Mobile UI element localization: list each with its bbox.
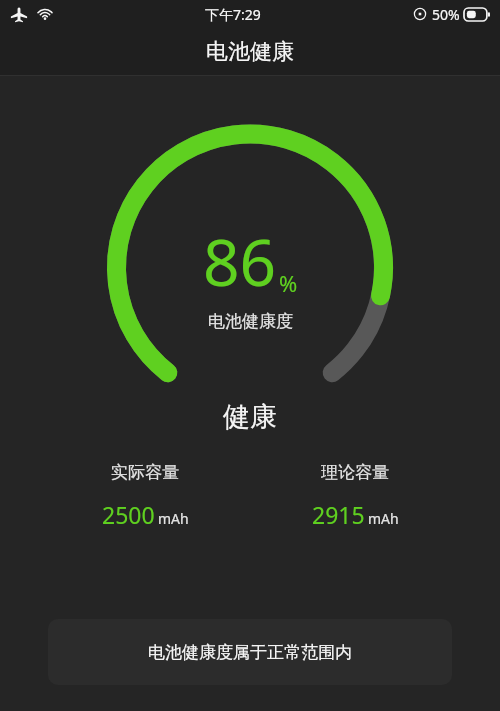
staticText: 50% [432, 5, 460, 24]
staticText: 86 [203, 218, 277, 305]
staticText: 健康 [0, 400, 500, 434]
staticText: 电池健康 [206, 38, 294, 66]
staticText: mAh [158, 509, 189, 528]
staticText: 理论容量 [321, 462, 389, 483]
staticText: 2915 [312, 499, 365, 530]
staticText: 电池健康度属于正常范围内 [148, 642, 352, 663]
staticText: 实际容量 [111, 462, 179, 483]
staticText: 下午7:29 [205, 5, 261, 24]
staticText: 2500 [102, 499, 155, 530]
staticText: mAh [368, 509, 399, 528]
button[interactable]: 电池健康度属于正常范围内 [48, 619, 452, 685]
staticText: % [279, 268, 298, 298]
staticText: 电池健康度 [208, 311, 293, 332]
